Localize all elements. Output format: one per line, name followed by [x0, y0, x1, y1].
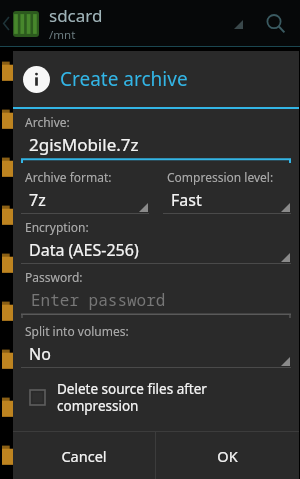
button[interactable]: Data (AES-256) — [17, 236, 295, 264]
button[interactable]: Cancel — [13, 432, 155, 479]
staticText: sdcard — [49, 4, 103, 27]
staticText: No — [29, 343, 51, 365]
button[interactable]: 7z — [17, 186, 153, 214]
staticText: Delete source files after compression — [57, 380, 207, 415]
staticText: Compression level: — [167, 169, 274, 185]
button[interactable]: Search — [254, 2, 298, 46]
button[interactable]: sdcard — [49, 4, 226, 43]
button[interactable]: Fast — [159, 186, 295, 214]
button[interactable]: Enter password — [17, 286, 295, 318]
staticText: /mnt — [49, 27, 76, 43]
staticText: Fast — [171, 189, 202, 211]
staticText: OK — [217, 446, 238, 466]
button[interactable]: Path options — [226, 12, 250, 36]
button[interactable]: OK — [156, 432, 299, 479]
staticText: 2gisMobile.7z — [29, 133, 139, 156]
button[interactable]: Up — [0, 0, 13, 47]
button[interactable]: 2gisMobile.7z — [17, 131, 295, 163]
staticText: Create archive — [60, 66, 188, 92]
staticText: Encryption: — [25, 219, 89, 235]
staticText: 7z — [29, 189, 46, 211]
staticText: Archive format: — [25, 169, 112, 185]
staticText: Split into volumes: — [25, 323, 129, 339]
staticText: Enter password — [31, 289, 166, 311]
button[interactable]: Delete source files after compression — [17, 376, 295, 419]
staticText: Data (AES-256) — [29, 239, 139, 261]
staticText: Archive: — [25, 114, 70, 130]
button[interactable]: No — [17, 340, 295, 368]
staticText: Cancel — [61, 446, 107, 466]
staticText: Password: — [25, 269, 83, 285]
